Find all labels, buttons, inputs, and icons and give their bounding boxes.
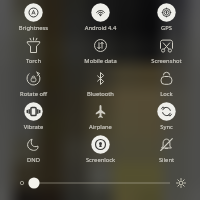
button[interactable]: Torch bbox=[0, 33, 67, 66]
button[interactable]: Rotate off bbox=[0, 66, 67, 99]
staticText: Lock bbox=[133, 90, 200, 98]
staticText: Airplane bbox=[67, 123, 134, 131]
button[interactable]: Android 4.4 bbox=[67, 0, 134, 33]
staticText: GPS bbox=[133, 24, 200, 32]
staticText: Brightness bbox=[0, 24, 67, 32]
button[interactable]: Bluetooth bbox=[67, 66, 134, 99]
staticText: DND bbox=[0, 156, 67, 164]
button[interactable]: Brightness bbox=[0, 0, 67, 33]
button[interactable]: Screenshot bbox=[133, 33, 200, 66]
button[interactable]: Mobile data bbox=[67, 33, 134, 66]
staticText: Screenlock bbox=[67, 156, 134, 164]
button[interactable]: Airplane bbox=[67, 99, 134, 132]
staticText: Sync bbox=[133, 123, 200, 131]
button[interactable]: Lock bbox=[133, 66, 200, 99]
button[interactable]: Vibrate bbox=[0, 99, 67, 132]
staticText: Silent bbox=[133, 156, 200, 164]
staticText: Vibrate bbox=[0, 123, 67, 131]
button[interactable]: Silent bbox=[133, 132, 200, 165]
staticText: Bluetooth bbox=[67, 90, 134, 98]
button[interactable]: GPS bbox=[133, 0, 200, 33]
staticText: Mobile data bbox=[67, 57, 134, 65]
button[interactable]: DND bbox=[0, 132, 67, 165]
staticText: Android 4.4 bbox=[67, 24, 134, 32]
staticText: Torch bbox=[0, 57, 67, 65]
button[interactable]: Sync bbox=[133, 99, 200, 132]
button[interactable]: Screenlock bbox=[67, 132, 134, 165]
button[interactable]: Brightness slider bbox=[0, 170, 200, 198]
staticText: Screenshot bbox=[133, 57, 200, 65]
staticText: Rotate off bbox=[0, 90, 67, 98]
